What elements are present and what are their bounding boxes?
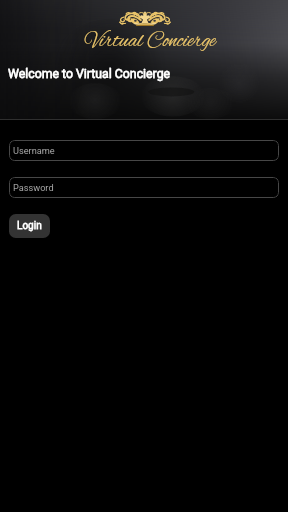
button[interactable]: Username [9,140,279,161]
staticText: Welcome to Virtual Concierge [8,67,171,81]
staticText: Virtual Concierge [85,28,216,55]
staticText: Login [17,220,42,232]
button[interactable]: Password [9,177,279,198]
staticText: Password [13,182,54,193]
staticText: Username [13,145,55,156]
button[interactable]: Login [9,214,50,238]
